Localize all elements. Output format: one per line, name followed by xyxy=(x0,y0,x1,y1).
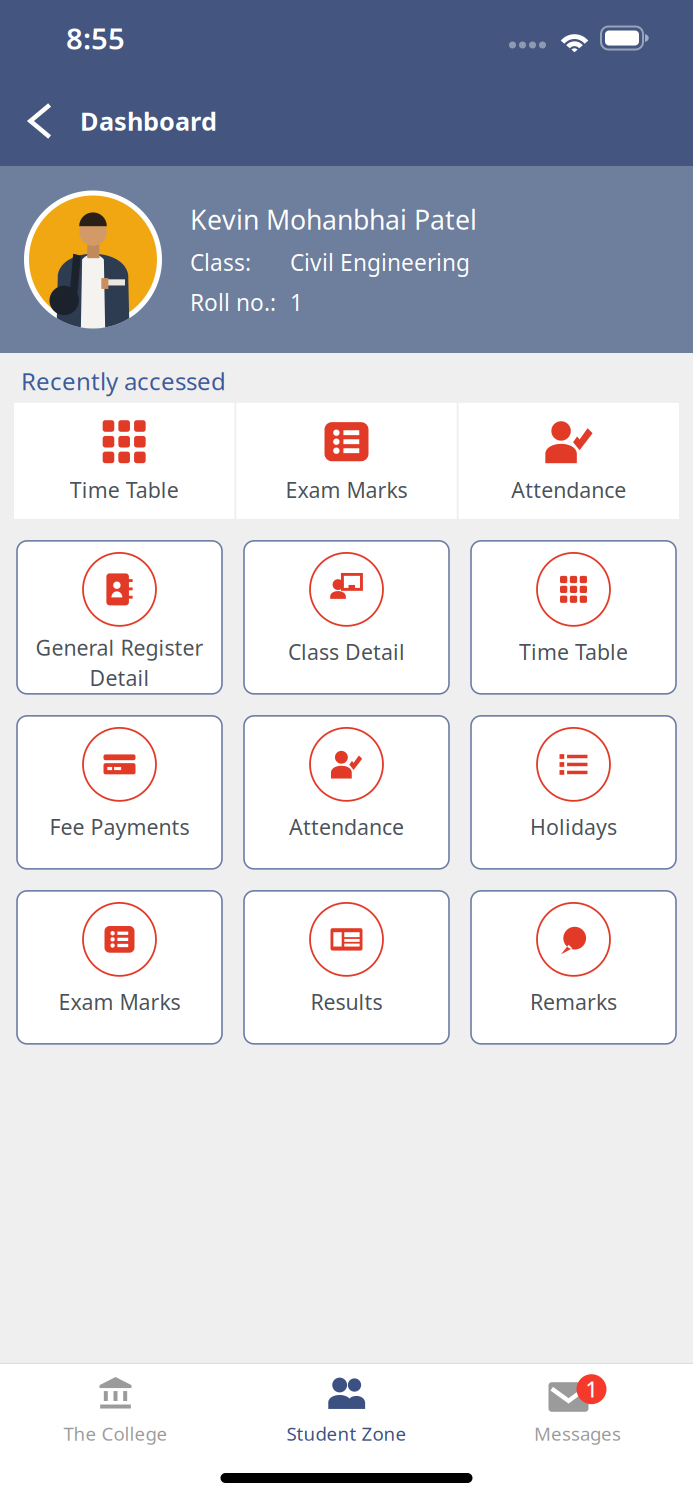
staticText: Results xyxy=(310,987,382,1016)
staticText: Detail xyxy=(89,663,149,692)
staticText: Fee Payments xyxy=(49,812,189,841)
staticText: Holidays xyxy=(530,812,617,841)
staticText: Attendance xyxy=(511,475,626,504)
button[interactable]: Class Detail xyxy=(244,541,449,694)
staticText: Kevin Mohanbhai Patel xyxy=(190,202,477,237)
staticText: Remarks xyxy=(530,987,617,1016)
staticText: General Register xyxy=(35,633,203,661)
button[interactable]: Time Table xyxy=(471,541,676,694)
staticText: The College xyxy=(63,1421,167,1446)
button[interactable]: Remarks xyxy=(471,891,676,1044)
staticText: Attendance xyxy=(289,812,404,841)
staticText: Messages xyxy=(534,1421,621,1446)
staticText: 1 xyxy=(290,287,303,317)
staticText: Civil Engineering xyxy=(290,247,470,277)
staticText: Recently accessed xyxy=(21,365,226,397)
staticText: Exam Marks xyxy=(58,987,180,1016)
button[interactable]: Attendance xyxy=(459,403,679,519)
staticText: Student Zone xyxy=(286,1421,406,1446)
button[interactable]: Holidays xyxy=(471,716,676,869)
staticText: Time Table xyxy=(519,637,628,666)
staticText: Time Table xyxy=(70,475,179,504)
button[interactable]: Student Zone xyxy=(231,1373,462,1446)
button[interactable]: Exam Marks xyxy=(17,891,222,1044)
button[interactable]: Exam Marks xyxy=(236,403,457,519)
button[interactable]: The College xyxy=(0,1373,231,1446)
button[interactable]: Back xyxy=(0,86,80,156)
staticText: 1 xyxy=(585,1375,597,1403)
button[interactable]: Results xyxy=(244,891,449,1044)
staticText: Dashboard xyxy=(80,104,217,138)
staticText: 8:55 xyxy=(66,18,125,57)
button[interactable]: Attendance xyxy=(244,716,449,869)
staticText: Class: xyxy=(190,247,251,277)
staticText: Roll no.: xyxy=(190,287,276,317)
button[interactable]: General Register xyxy=(17,541,222,694)
button[interactable]: Fee Payments xyxy=(17,716,222,869)
button[interactable]: Time Table xyxy=(14,403,234,519)
button[interactable]: 1 xyxy=(462,1373,693,1446)
staticText: Exam Marks xyxy=(285,475,407,504)
staticText: Class Detail xyxy=(288,637,405,666)
